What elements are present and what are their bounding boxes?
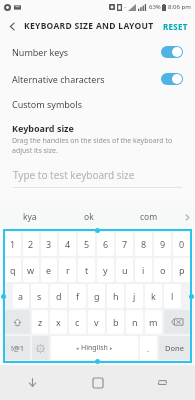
- button[interactable]: x: [50, 310, 67, 334]
- staticText: h: [113, 290, 119, 302]
- staticText: KEYBOARD SIZE AND LAYOUT: [24, 20, 154, 32]
- staticText: o: [160, 264, 166, 276]
- button[interactable]: l: [164, 284, 181, 308]
- button[interactable]: Back: [0, 14, 24, 38]
- staticText: n: [132, 316, 138, 328]
- button[interactable]: c: [69, 310, 86, 334]
- button[interactable]: f: [69, 284, 86, 308]
- staticText: t: [85, 264, 89, 276]
- staticText: 3: [46, 238, 52, 250]
- button[interactable]: w: [23, 258, 39, 282]
- button[interactable]: y: [97, 258, 114, 282]
- button[interactable]: s: [31, 284, 48, 308]
- button[interactable]: t: [78, 258, 95, 282]
- button[interactable]: Alternative characters: [0, 65, 195, 92]
- button[interactable]: RESET: [156, 17, 195, 36]
- button[interactable]: More suggestions: [179, 207, 195, 227]
- staticText: ok: [84, 211, 94, 223]
- button[interactable]: 2: [23, 232, 39, 256]
- staticText: y: [103, 264, 108, 276]
- button[interactable]: Number keys: [0, 38, 195, 65]
- button[interactable]: n: [126, 310, 143, 334]
- staticText: s: [37, 290, 42, 302]
- button[interactable]: j: [126, 284, 143, 308]
- staticText: 6: [103, 238, 109, 250]
- button[interactable]: kya: [0, 207, 59, 227]
- button[interactable]: com: [119, 207, 179, 227]
- staticText: Hinglish: [81, 343, 108, 353]
- staticText: 0: [179, 238, 185, 250]
- staticText: r: [66, 264, 70, 276]
- button[interactable]: Settings: [32, 336, 49, 360]
- button[interactable]: r: [59, 258, 76, 282]
- staticText: 5: [84, 238, 90, 250]
- button[interactable]: 3: [41, 232, 57, 256]
- staticText: l: [171, 290, 174, 302]
- staticText: e: [46, 264, 52, 276]
- button[interactable]: 0: [173, 232, 190, 256]
- staticText: k: [151, 290, 156, 302]
- button[interactable]: m: [145, 310, 162, 334]
- button[interactable]: k: [145, 284, 162, 308]
- button[interactable]: .: [140, 336, 157, 360]
- button[interactable]: a: [13, 284, 29, 308]
- staticText: Type to test keyboard size: [13, 168, 135, 182]
- button[interactable]: o: [154, 258, 171, 282]
- button[interactable]: 6: [97, 232, 114, 256]
- staticText: a: [18, 290, 24, 302]
- button[interactable]: 1: [5, 232, 21, 256]
- button[interactable]: !@1: [5, 336, 30, 360]
- button[interactable]: u: [116, 258, 133, 282]
- button[interactable]: 9: [154, 232, 171, 256]
- button[interactable]: ◂: [51, 336, 138, 360]
- staticText: 1: [10, 238, 16, 250]
- button[interactable]: 7: [116, 232, 133, 256]
- staticText: Keyboard size: [12, 122, 74, 134]
- button[interactable]: q: [5, 258, 21, 282]
- button[interactable]: 4: [59, 232, 76, 256]
- button[interactable]: Home: [65, 365, 130, 400]
- button[interactable]: ok: [59, 207, 119, 227]
- button[interactable]: p: [173, 258, 190, 282]
- staticText: w: [27, 264, 35, 276]
- button[interactable]: b: [107, 310, 124, 334]
- button[interactable]: 8: [135, 232, 152, 256]
- staticText: ··: [124, 4, 127, 11]
- staticText: 8: [141, 238, 147, 250]
- staticText: 9: [160, 238, 166, 250]
- button[interactable]: i: [135, 258, 152, 282]
- button[interactable]: Hide keyboard: [0, 365, 65, 400]
- staticText: u: [122, 264, 128, 276]
- staticText: q: [10, 264, 16, 276]
- button[interactable]: Backspace: [164, 310, 190, 334]
- staticText: com: [140, 211, 158, 223]
- staticText: x: [56, 316, 61, 328]
- button[interactable]: z: [32, 310, 48, 334]
- button[interactable]: Custom symbols: [0, 92, 195, 116]
- staticText: Custom symbols: [12, 98, 82, 110]
- staticText: RESET: [163, 21, 188, 32]
- staticText: j: [133, 290, 136, 302]
- button[interactable]: Recents: [130, 365, 195, 400]
- staticText: b: [113, 316, 119, 328]
- button[interactable]: Shift: [5, 310, 30, 334]
- other: Resize left: [1, 294, 6, 299]
- staticText: .: [147, 343, 150, 354]
- other: Resize right: [189, 294, 194, 299]
- staticText: v: [94, 316, 99, 328]
- button[interactable]: Done: [159, 336, 190, 360]
- staticText: 7: [122, 238, 128, 250]
- button[interactable]: v: [88, 310, 105, 334]
- button[interactable]: 5: [78, 232, 95, 256]
- staticText: z: [38, 316, 43, 328]
- staticText: p: [179, 264, 185, 276]
- button[interactable]: e: [41, 258, 57, 282]
- button[interactable]: g: [88, 284, 105, 308]
- staticText: c: [75, 316, 80, 328]
- staticText: 8:06 pm: [168, 3, 191, 11]
- button[interactable]: h: [107, 284, 124, 308]
- staticText: !@1: [11, 343, 25, 353]
- staticText: 2: [28, 238, 34, 250]
- button[interactable]: d: [50, 284, 67, 308]
- staticText: f: [76, 290, 80, 302]
